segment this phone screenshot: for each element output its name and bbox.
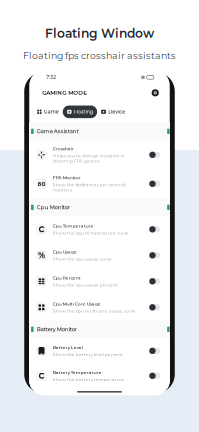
button[interactable]: C <box>29 363 170 388</box>
staticText: Floating fps crosshair assistants <box>23 50 176 61</box>
button[interactable]: Game <box>33 106 63 118</box>
button[interactable]: C <box>29 216 170 242</box>
button[interactable]: Crosshair <box>29 140 170 169</box>
button[interactable]: Device <box>97 106 129 118</box>
staticText: Battery Monitor <box>37 326 77 333</box>
button[interactable]: Floating <box>63 105 97 118</box>
button[interactable]: Cpu Percent <box>29 268 170 294</box>
staticText: Cpu Temperature <box>53 223 94 229</box>
staticText: Show the battery temperature <box>53 377 125 382</box>
staticText: % <box>38 250 45 260</box>
staticText: Game Assistant <box>37 128 79 135</box>
staticText: Crosshair <box>53 146 74 151</box>
staticText: Cpu Percent <box>53 275 81 281</box>
button[interactable]: Battery Level <box>29 338 170 363</box>
staticText: 7:32 <box>46 74 56 80</box>
staticText: Cpu Monitor <box>37 204 70 211</box>
staticText: C <box>38 371 44 381</box>
staticText: GAMING MODE <box>42 89 87 96</box>
staticText: Helps you to change crosshair in shootin… <box>53 153 125 164</box>
button[interactable]: Cpu Multi Core Usage <box>29 294 170 320</box>
staticText: Show the cpu temperature curve <box>53 230 129 235</box>
button[interactable]: 60 <box>29 169 170 198</box>
button[interactable]: % <box>29 242 170 268</box>
staticText: ✻ <box>141 74 145 80</box>
staticText: Show the cpu usage curve <box>53 256 112 261</box>
staticText: Floating <box>74 109 93 115</box>
staticText: Show the battery level percent <box>53 352 123 357</box>
staticText: Show the cpu multi core usage curve <box>53 308 136 313</box>
staticText: Device <box>108 109 125 115</box>
staticText: Cpu Multi Core Usage <box>53 301 101 307</box>
staticText: Battery Temperature <box>53 370 102 375</box>
staticText: C <box>38 224 44 234</box>
staticText: FPS Monitor <box>53 175 81 180</box>
button[interactable]: Settings <box>150 87 161 98</box>
staticText: Show the cpu usage percent <box>53 282 118 287</box>
staticText: Cpu Usage <box>53 249 77 255</box>
staticText: Show the fps(frames per second) realtime <box>53 182 126 193</box>
staticText: Battery Level <box>53 345 83 350</box>
staticText: Floating Window <box>45 26 154 41</box>
staticText: Game <box>44 109 59 115</box>
staticText: 60 <box>37 180 45 187</box>
